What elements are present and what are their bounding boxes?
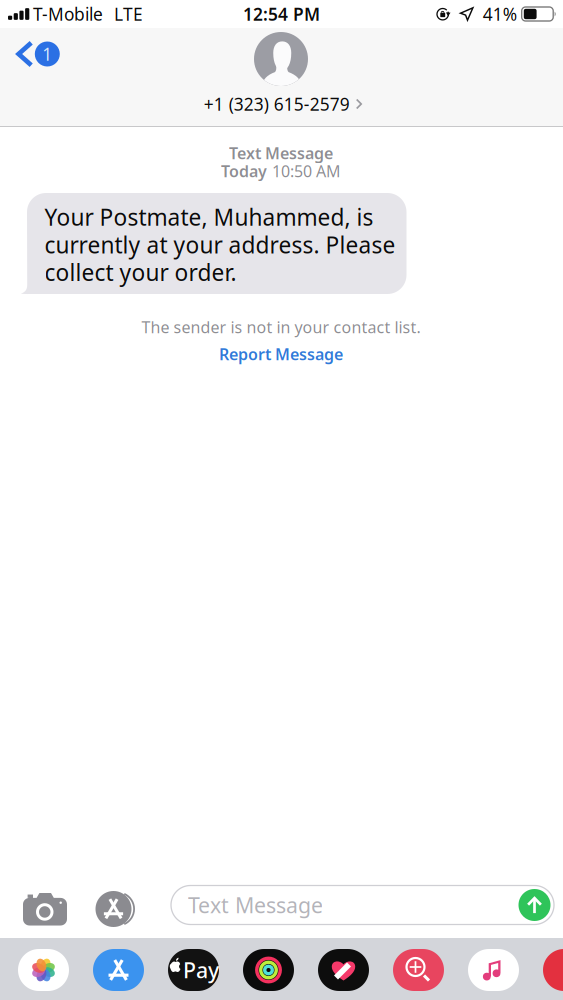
staticText: Text Message xyxy=(229,142,333,164)
button[interactable]: Back xyxy=(16,32,78,76)
button[interactable]: +1 (323) 615-2579 xyxy=(196,88,370,119)
staticText: 12:54 PM xyxy=(243,2,320,25)
button[interactable]: Apple Pay xyxy=(168,949,219,991)
staticText: +1 (323) 615-2579 xyxy=(204,92,350,115)
staticText: Today xyxy=(221,160,267,182)
staticText: Your Postmate, Muhammed, is currently at… xyxy=(44,202,395,287)
staticText: The sender is not in your contact list. xyxy=(141,316,420,338)
staticText: T-Mobile xyxy=(33,2,103,25)
button[interactable]: Camera xyxy=(15,884,75,933)
staticText: Text Message xyxy=(188,891,323,919)
button[interactable]: Apps xyxy=(90,884,145,934)
staticText: 41% xyxy=(483,2,517,25)
staticText: Report Message xyxy=(219,343,343,365)
button[interactable]: Photos xyxy=(18,949,69,991)
button[interactable]: Report Message xyxy=(209,338,353,370)
button[interactable]: Stickers xyxy=(318,949,369,991)
staticText: LTE xyxy=(114,2,143,25)
staticText: 1 xyxy=(42,42,52,65)
button[interactable]: Fitness xyxy=(243,949,294,991)
button[interactable]: More xyxy=(543,949,563,991)
button[interactable]: Send xyxy=(518,889,554,921)
button[interactable]: App Store xyxy=(93,949,144,991)
button[interactable]: Music xyxy=(468,949,519,991)
button[interactable]: Images xyxy=(393,949,444,991)
staticText: 10:50 AM xyxy=(272,160,341,182)
staticText: Pay xyxy=(183,956,219,984)
